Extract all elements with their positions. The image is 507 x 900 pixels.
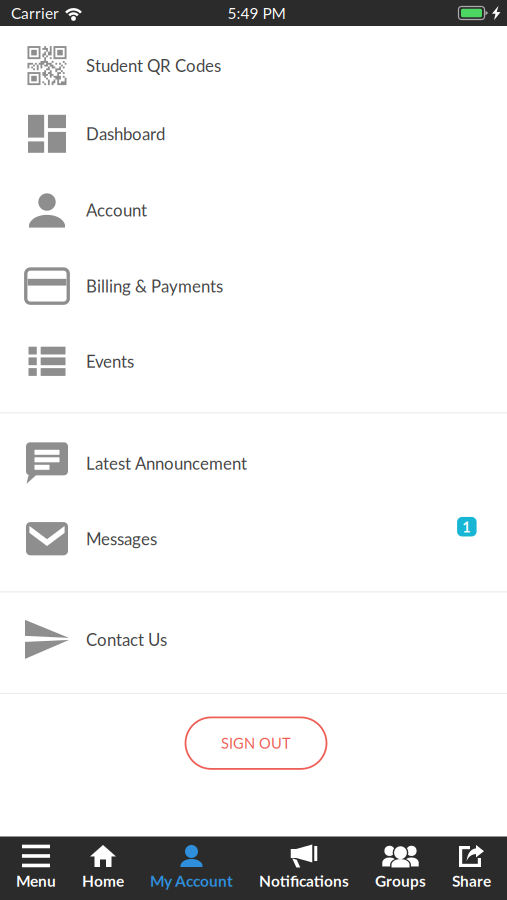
staticText: 1: [462, 518, 471, 535]
staticText: Menu: [16, 871, 56, 890]
staticText: Notifications: [259, 871, 349, 890]
button[interactable]: Menu: [3, 836, 69, 900]
staticText: Home: [82, 871, 124, 890]
button[interactable]: Student QR Codes: [0, 26, 507, 92]
staticText: Account: [86, 200, 147, 220]
staticText: Events: [86, 351, 134, 371]
button[interactable]: Latest Announcement: [0, 413, 507, 485]
button[interactable]: Messages: [0, 485, 507, 561]
staticText: Student QR Codes: [86, 55, 221, 76]
staticText: Latest Announcement: [86, 453, 247, 473]
button[interactable]: Account: [0, 156, 507, 232]
staticText: Dashboard: [86, 124, 165, 144]
staticText: Billing & Payments: [86, 276, 223, 296]
staticText: 5:49 PM: [227, 4, 285, 22]
staticText: Contact Us: [86, 629, 167, 649]
staticText: My Account: [150, 871, 233, 890]
button[interactable]: Notifications: [246, 836, 362, 900]
button[interactable]: My Account: [137, 836, 246, 900]
staticText: Messages: [86, 529, 157, 549]
button[interactable]: Share: [439, 836, 504, 900]
button[interactable]: Groups: [362, 836, 439, 900]
staticText: Share: [452, 871, 491, 890]
button[interactable]: SIGN OUT: [185, 717, 326, 769]
staticText: Groups: [375, 871, 426, 890]
button[interactable]: Home: [69, 836, 137, 900]
button[interactable]: Contact Us: [0, 592, 507, 661]
button[interactable]: Dashboard: [0, 92, 507, 156]
staticText: SIGN OUT: [221, 734, 291, 752]
button[interactable]: Billing & Payments: [0, 232, 507, 308]
staticText: Carrier: [11, 4, 59, 22]
button[interactable]: Events: [0, 308, 507, 383]
